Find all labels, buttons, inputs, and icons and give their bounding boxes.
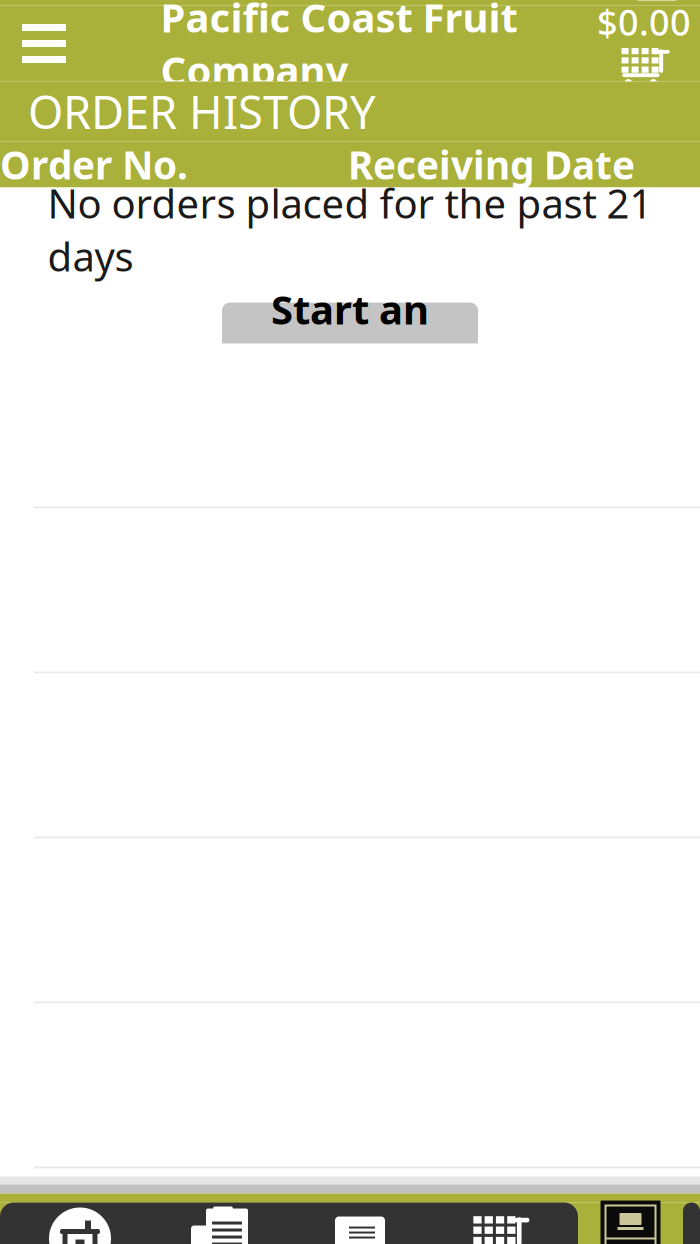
staticText: Pacific Coast Fruit Company (160, 0, 517, 97)
button[interactable]: Orders (150, 1202, 290, 1244)
staticText: ORDER HISTORY (28, 81, 376, 142)
staticText: Receiving Date (348, 139, 635, 190)
staticText: Start an order (271, 282, 429, 389)
button[interactable]: Cart (430, 1202, 568, 1244)
staticText: No orders placed for the past 21 days (47, 176, 652, 283)
button[interactable]: Home (10, 1202, 150, 1244)
button[interactable]: Catalog (290, 1202, 430, 1244)
staticText: 11:02 AM (326, 0, 465, 9)
button[interactable]: Start an order (222, 303, 478, 369)
staticText: $0.00 (597, 0, 691, 46)
button[interactable]: Order History (578, 1202, 683, 1244)
button[interactable]: Cart, $0.00 (596, 3, 692, 83)
button[interactable]: Menu (6, 6, 82, 80)
staticText: Carrier (16, 0, 119, 9)
staticText: Order No. (0, 139, 188, 190)
